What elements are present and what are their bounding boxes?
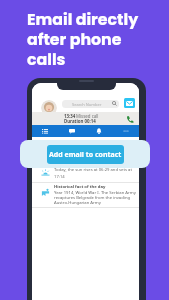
- button[interactable]: 13:34: [32, 112, 139, 125]
- staticText: Today, the sun rises at 06:29 and sets a…: [54, 167, 132, 179]
- button[interactable]: Search: [112, 101, 117, 106]
- staticText: Year 1914, World War I. The Serbian Army…: [54, 190, 136, 205]
- button[interactable]: Messages: [58, 125, 85, 137]
- staticText: Missed call: [76, 113, 99, 119]
- button[interactable]: Search Number: [62, 100, 119, 108]
- staticText: Search Number: [72, 102, 102, 107]
- button[interactable]: Send email: [124, 98, 135, 108]
- button[interactable]: Call: [126, 115, 134, 123]
- button[interactable]: Today, the sun rises at 06:29 and sets a…: [32, 166, 139, 182]
- button[interactable]: Add email to contact: [47, 145, 124, 164]
- staticText: Add email to contact: [49, 150, 122, 160]
- button[interactable]: Notifications: [85, 125, 112, 137]
- staticText: Duration 00:14: [64, 118, 96, 124]
- staticText: 13:34: [64, 113, 76, 119]
- staticText: Email directly after phone calls: [27, 8, 139, 70]
- staticText: Historical fact of the day: [54, 184, 106, 190]
- button[interactable]: More: [112, 125, 139, 137]
- button[interactable]: Call log: [32, 125, 58, 137]
- button[interactable]: Historical fact of the day: [32, 183, 139, 207]
